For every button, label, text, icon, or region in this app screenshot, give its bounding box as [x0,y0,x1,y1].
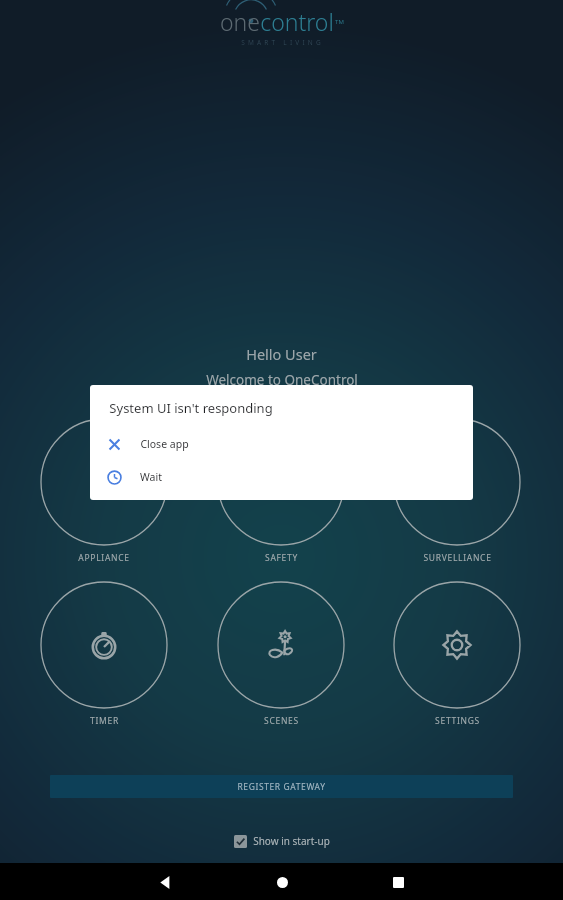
staticText: Welcome to OneControl [206,371,358,389]
staticText: Hello User [246,344,317,364]
staticText: SETTINGS [435,715,480,727]
button[interactable]: REGISTER GATEWAY [50,775,513,798]
button[interactable]: Show in start-up [234,834,330,848]
button[interactable]: SETTINGS [393,581,521,729]
button[interactable]: Wait [90,466,473,488]
staticText: APPLIANCE [78,552,130,564]
staticText: REGISTER GATEWAY [237,781,326,793]
button[interactable]: SAFETY [217,418,345,566]
staticText: SMART LIVING [241,38,324,47]
button[interactable]: TIMER [40,581,168,729]
button[interactable]: SURVELLIANCE [393,418,521,566]
button[interactable]: Home [267,867,297,897]
button[interactable]: APPLIANCE [40,418,168,566]
button[interactable]: SCENES [217,581,345,729]
staticText: TM [335,18,344,26]
staticText: SAFETY [265,552,298,564]
button[interactable]: Recents [383,867,413,897]
staticText: SCENES [264,715,299,727]
staticText: Wait [140,470,162,484]
staticText: Show in start-up [253,834,330,848]
staticText: System UI isn't responding [109,399,273,417]
staticText: TIMER [90,715,119,727]
staticText: control [260,6,334,37]
staticText: Close app [140,437,189,451]
staticText: one [220,6,260,37]
staticText: SURVELLIANCE [423,552,492,564]
button[interactable]: Back [150,867,180,897]
button[interactable]: Close app [90,433,473,455]
